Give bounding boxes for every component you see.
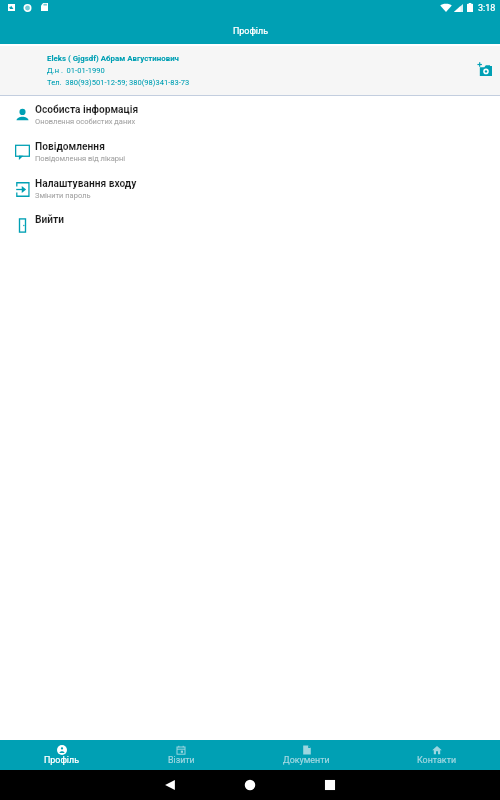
staticText: 3:18 [478,3,496,14]
staticText: Документи [283,755,330,765]
staticText: Візити [168,755,195,765]
staticText: Профіль [44,755,79,765]
button[interactable]: Вийти [0,214,500,236]
button[interactable]: Eleks ( Gjgsdf) Абрам Августинович [0,46,500,95]
staticText: Вийти [35,214,65,226]
staticText: Контакти [417,755,457,765]
staticText: Eleks ( Gjgsdf) Абрам Августинович [47,54,179,63]
button[interactable]: Повідомлення [0,141,500,163]
staticText: Змінити пароль [35,191,91,200]
staticText: Повідомлення від лікарні [35,154,126,163]
button[interactable]: Контакти [374,740,500,770]
button[interactable]: Профіль [0,740,123,770]
button[interactable]: Home [243,778,257,792]
button[interactable]: Особиста інформація [0,104,500,126]
staticText: Налаштування входу [35,178,137,190]
staticText: Особиста інформація [35,104,139,116]
button[interactable]: Change photo [473,57,497,81]
button[interactable]: Налаштування входу [0,178,500,200]
staticText: Тел. 380(93)501-12-59; 380(98)341-83-73 [47,78,190,87]
staticText: Профіль [233,26,268,36]
staticText: Оновлення особистих даних [35,117,136,126]
button[interactable]: Recent apps [323,778,337,792]
button[interactable]: Візити [123,740,239,770]
button[interactable]: Back [163,778,177,792]
staticText: Д.н . 01-01-1990 [47,66,105,75]
button[interactable]: Документи [239,740,374,770]
staticText: Повідомлення [35,141,105,153]
